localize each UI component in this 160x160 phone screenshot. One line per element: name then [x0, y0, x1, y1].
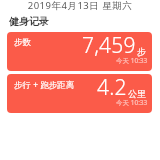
button[interactable]: 步数: [7, 32, 152, 71]
staticText: 2019年4月13日 星期六: [0, 0, 160, 12]
staticText: 4.2: [97, 74, 127, 102]
staticText: 步行 + 跑步距离: [14, 79, 75, 91]
staticText: 公里: [128, 88, 146, 99]
button[interactable]: 步行 + 跑步距离: [7, 74, 152, 113]
staticText: 今天 10:33: [116, 98, 148, 107]
staticText: 步: [137, 46, 146, 57]
staticText: 步数: [14, 37, 31, 48]
staticText: 健身记录: [9, 15, 49, 28]
staticText: 今天 10:33: [116, 56, 148, 65]
staticText: 7,459: [82, 32, 136, 60]
